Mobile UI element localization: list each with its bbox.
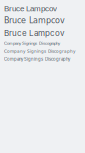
staticText: Company Signings Discography <box>4 57 70 62</box>
staticText: Bruce Lampcov <box>4 16 65 25</box>
staticText: Company Signings Discography <box>4 41 60 46</box>
staticText: Company Signings Discography <box>4 49 76 54</box>
staticText: Bruce Lampcov <box>4 28 64 38</box>
staticText: Bruce Lampcov <box>4 4 57 13</box>
